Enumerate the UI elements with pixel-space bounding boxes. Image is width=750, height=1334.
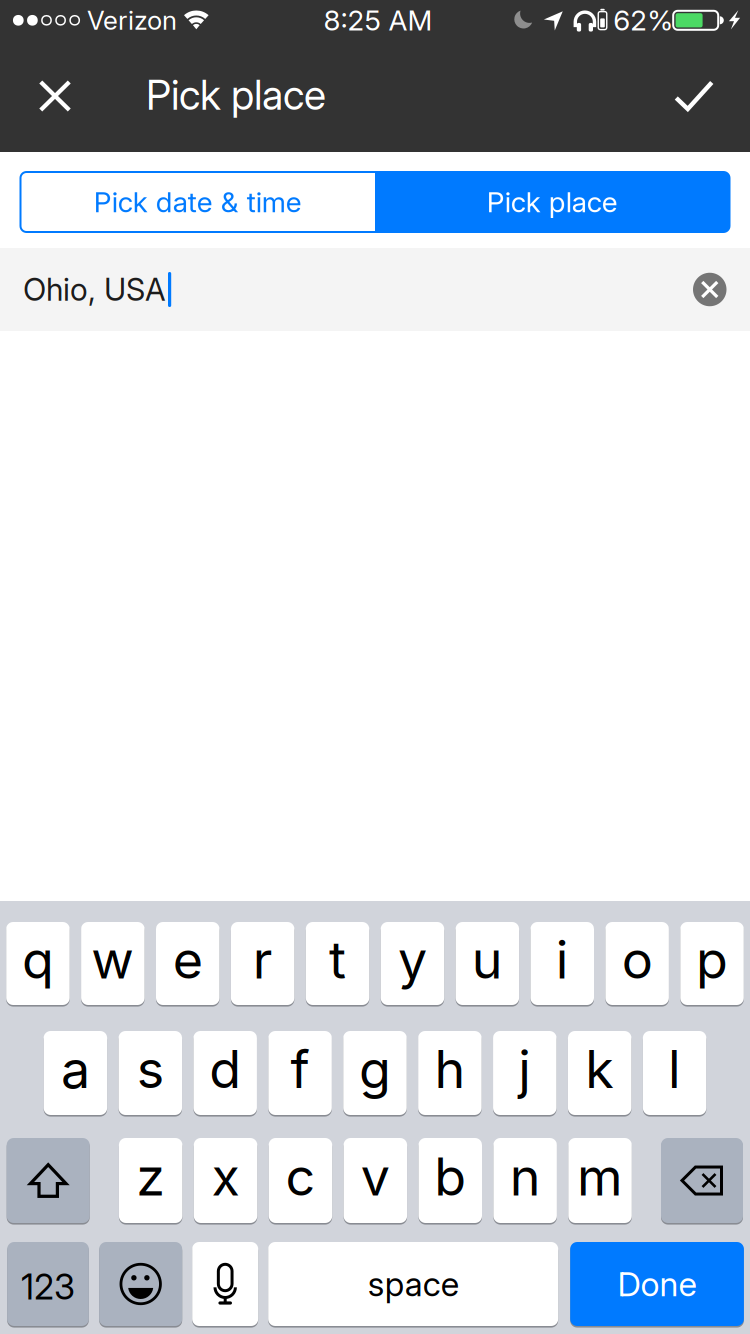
button[interactable]: x — [194, 1138, 257, 1223]
button[interactable]: a — [44, 1031, 107, 1115]
staticText: v — [361, 1145, 390, 1208]
staticText: k — [585, 1037, 614, 1100]
staticText: z — [136, 1145, 165, 1208]
staticText: u — [472, 928, 503, 991]
staticText: p — [696, 928, 728, 991]
staticText: h — [434, 1037, 465, 1100]
button[interactable]: q — [6, 922, 70, 1005]
button[interactable]: h — [418, 1031, 482, 1115]
button[interactable]: e — [156, 922, 219, 1005]
button[interactable]: d — [193, 1031, 257, 1115]
button[interactable]: Done — [654, 40, 734, 152]
button[interactable]: p — [680, 922, 744, 1005]
staticText: s — [137, 1037, 164, 1100]
button[interactable]: j — [493, 1031, 556, 1115]
button[interactable]: Close — [13, 40, 97, 152]
button[interactable]: Pick date & time — [20, 172, 375, 232]
button[interactable]: Pick place — [375, 172, 729, 232]
button[interactable]: Dictate — [192, 1242, 258, 1326]
button[interactable]: Pick place — [146, 39, 326, 151]
button[interactable]: u — [456, 922, 519, 1005]
button[interactable]: v — [344, 1138, 407, 1223]
button[interactable]: s — [118, 1031, 182, 1115]
staticText: 62% — [613, 3, 673, 37]
button[interactable]: space — [268, 1242, 558, 1326]
staticText: r — [253, 928, 273, 991]
button[interactable]: g — [343, 1031, 407, 1115]
staticText: m — [577, 1145, 623, 1208]
staticText: g — [359, 1037, 391, 1100]
staticText: n — [510, 1145, 541, 1208]
button[interactable]: Emoji — [99, 1242, 182, 1326]
staticText: Pick place — [146, 70, 326, 120]
staticText: Verizon — [87, 4, 177, 36]
button[interactable]: r — [231, 922, 294, 1005]
staticText: 8:25 AM — [323, 3, 432, 37]
button[interactable]: i — [530, 922, 594, 1005]
button[interactable]: 123 — [7, 1242, 89, 1326]
button[interactable]: n — [493, 1138, 557, 1223]
button[interactable]: c — [269, 1138, 332, 1223]
button[interactable]: t — [306, 922, 369, 1005]
staticText: Ohio, USA — [23, 271, 166, 308]
staticText: d — [209, 1037, 241, 1100]
button[interactable]: m — [568, 1138, 632, 1223]
button[interactable]: y — [381, 922, 444, 1005]
staticText: a — [61, 1037, 90, 1100]
button[interactable]: f — [268, 1031, 332, 1115]
staticText: e — [173, 928, 203, 991]
staticText: f — [291, 1037, 310, 1100]
button[interactable]: k — [568, 1031, 631, 1115]
button[interactable]: w — [81, 922, 145, 1005]
staticText: x — [212, 1145, 240, 1208]
button[interactable]: l — [643, 1031, 706, 1115]
staticText: q — [22, 928, 54, 991]
staticText: o — [622, 928, 653, 991]
button[interactable]: b — [418, 1138, 482, 1223]
button[interactable]: Clear text — [693, 273, 726, 306]
button[interactable]: z — [119, 1138, 182, 1223]
staticText: w — [91, 928, 134, 991]
staticText: Done — [618, 1264, 697, 1304]
staticText: l — [668, 1037, 681, 1100]
staticText: t — [329, 928, 346, 991]
staticText: i — [556, 928, 569, 991]
button[interactable]: Done — [570, 1242, 744, 1326]
staticText: 123 — [21, 1266, 75, 1308]
staticText: b — [434, 1145, 466, 1208]
button[interactable]: Shift — [7, 1138, 90, 1223]
button[interactable]: o — [605, 922, 669, 1005]
staticText: j — [518, 1037, 531, 1100]
staticText: Pick place — [487, 185, 618, 219]
button[interactable]: Backspace — [661, 1138, 743, 1223]
staticText: y — [398, 928, 427, 991]
staticText: c — [285, 1145, 315, 1208]
staticText: Pick date & time — [94, 185, 302, 219]
staticText: space — [368, 1264, 459, 1304]
